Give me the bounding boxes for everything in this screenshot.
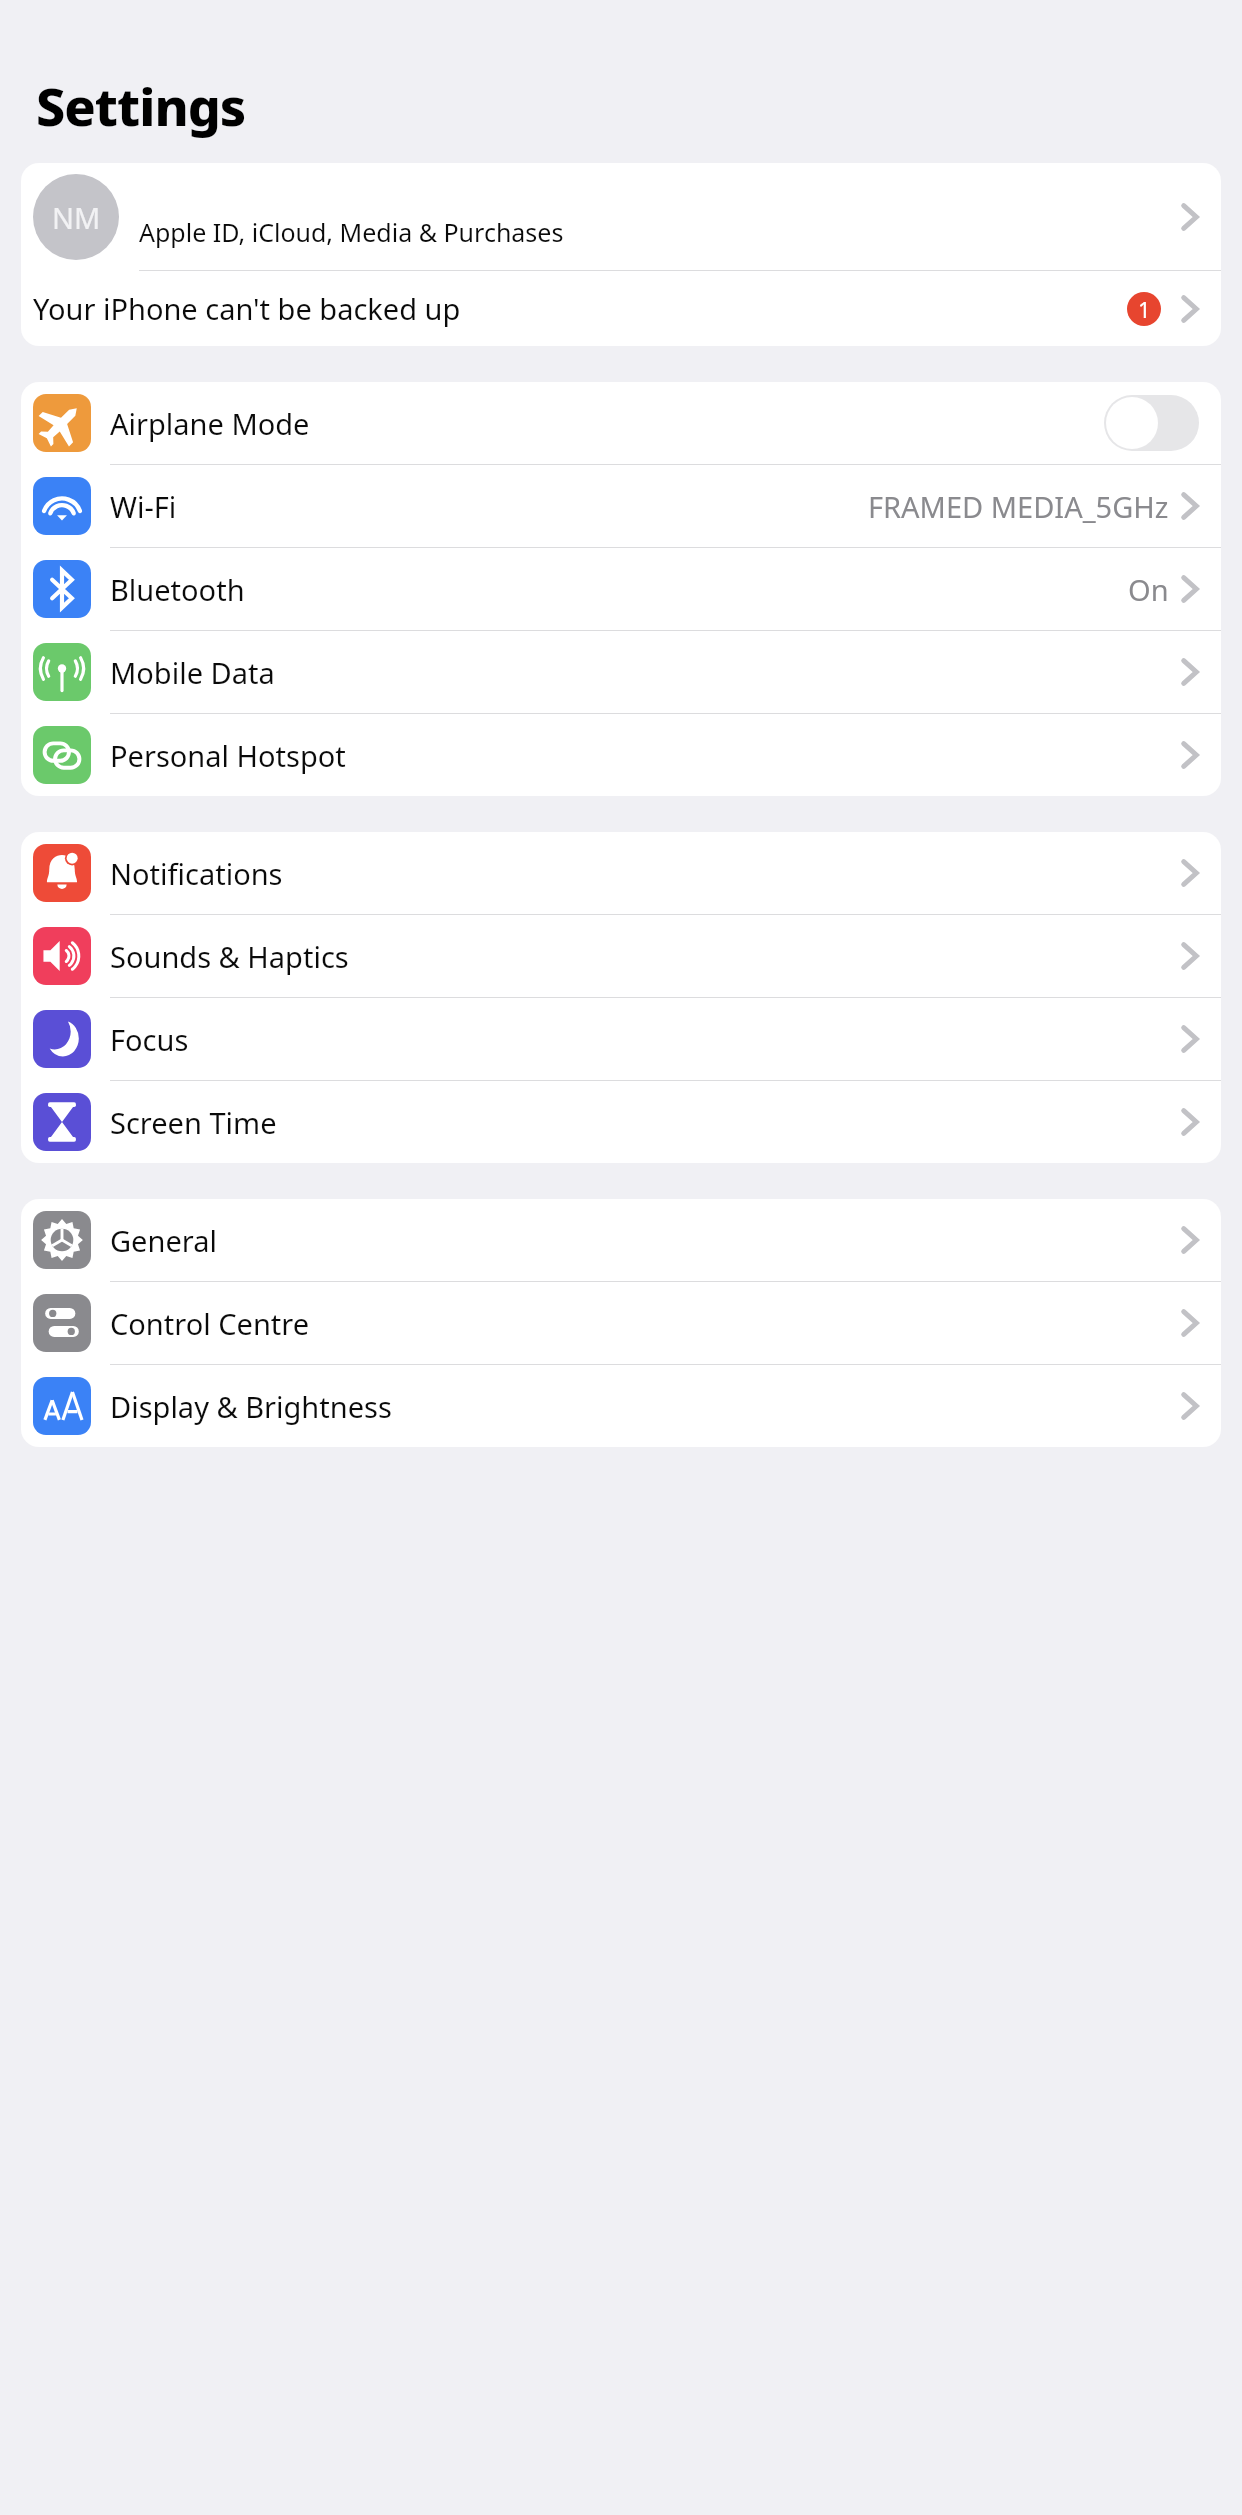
staticText: Settings xyxy=(36,70,246,141)
button[interactable]: Wi-Fi xyxy=(21,465,1221,548)
button[interactable]: Display & Brightness xyxy=(21,1365,1221,1447)
staticText: On xyxy=(1128,570,1169,609)
staticText: Your iPhone can't be backed up xyxy=(33,289,1127,328)
staticText: Control Centre xyxy=(110,1304,1181,1343)
button[interactable]: Sounds & Haptics xyxy=(21,915,1221,998)
staticText: FRAMED MEDIA_5GHz xyxy=(868,487,1169,526)
staticText: Airplane Mode xyxy=(110,404,1104,443)
button[interactable]: NM xyxy=(21,163,1221,270)
button[interactable]: Airplane Mode xyxy=(21,382,1221,465)
button[interactable]: Personal Hotspot xyxy=(21,714,1221,796)
staticText: Screen Time xyxy=(110,1103,1181,1142)
staticText: Apple ID, iCloud, Media & Purchases xyxy=(139,215,564,249)
staticText: Wi-Fi xyxy=(110,487,868,526)
button[interactable]: Bluetooth xyxy=(21,548,1221,631)
staticText: Bluetooth xyxy=(110,570,1128,609)
button[interactable]: Screen Time xyxy=(21,1081,1221,1163)
staticText: Focus xyxy=(110,1020,1181,1059)
staticText: Notifications xyxy=(110,854,1181,893)
staticText: Sounds & Haptics xyxy=(110,937,1181,976)
button[interactable]: Focus xyxy=(21,998,1221,1081)
button[interactable]: Control Centre xyxy=(21,1282,1221,1365)
button[interactable]: Mobile Data xyxy=(21,631,1221,714)
staticText: Personal Hotspot xyxy=(110,736,1181,775)
staticText: Mobile Data xyxy=(110,653,1181,692)
staticText: General xyxy=(110,1221,1181,1260)
button[interactable]: Your iPhone can't be backed up xyxy=(21,271,1221,346)
staticText: Display & Brightness xyxy=(110,1387,1181,1426)
staticText: NM xyxy=(52,198,101,237)
button[interactable]: General xyxy=(21,1199,1221,1282)
staticText: 1 xyxy=(1138,294,1151,324)
button[interactable]: Notifications xyxy=(21,832,1221,915)
button[interactable]: Airplane Mode toggle xyxy=(1104,395,1199,451)
